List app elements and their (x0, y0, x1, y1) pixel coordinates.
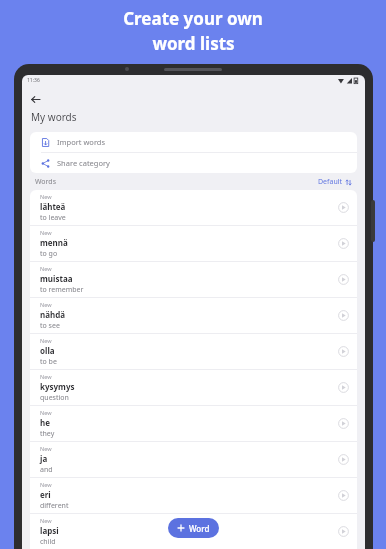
staticText: Import words (57, 137, 106, 147)
button[interactable]: New (30, 442, 357, 477)
staticText: he (40, 417, 50, 428)
button[interactable]: Share category (30, 153, 357, 173)
button[interactable]: Play pronunciation (338, 418, 349, 429)
staticText: they (40, 429, 55, 439)
button[interactable]: New (30, 334, 357, 369)
button[interactable]: New (30, 478, 357, 513)
staticText: Create your own (123, 7, 263, 30)
staticText: to leave (40, 213, 66, 223)
staticText: New (40, 193, 52, 200)
staticText: to be (40, 357, 57, 367)
staticText: New (40, 481, 52, 488)
staticText: lapsi (40, 525, 59, 536)
staticText: lähteä (40, 201, 66, 212)
staticText: different (40, 501, 69, 511)
button[interactable]: New (30, 298, 357, 333)
button[interactable]: Play pronunciation (338, 454, 349, 465)
staticText: New (40, 229, 52, 236)
staticText: to remember (40, 285, 84, 295)
button[interactable]: New (30, 226, 357, 261)
staticText: 11:36 (27, 77, 40, 84)
button[interactable]: Play pronunciation (338, 346, 349, 357)
button[interactable]: Play pronunciation (338, 526, 349, 537)
staticText: New (40, 337, 52, 344)
button[interactable]: Import words (30, 132, 357, 152)
staticText: My words (31, 110, 77, 124)
button[interactable]: New (30, 514, 357, 549)
staticText: kysymys (40, 381, 75, 392)
button[interactable]: Play pronunciation (338, 382, 349, 393)
staticText: New (40, 265, 52, 272)
button[interactable]: New (30, 406, 357, 441)
staticText: Default (318, 177, 343, 187)
staticText: New (40, 445, 52, 452)
button[interactable]: Play pronunciation (338, 274, 349, 285)
staticText: and (40, 465, 53, 475)
button[interactable]: Play pronunciation (338, 238, 349, 249)
staticText: New (40, 409, 52, 416)
button[interactable]: Default (317, 177, 353, 187)
button[interactable]: New (30, 190, 357, 225)
button[interactable]: Back (27, 91, 43, 107)
staticText: to go (40, 249, 58, 259)
button[interactable]: Play pronunciation (338, 310, 349, 321)
staticText: muistaa (40, 273, 73, 284)
button[interactable]: New (30, 370, 357, 405)
staticText: mennä (40, 237, 68, 248)
button[interactable]: New (30, 262, 357, 297)
staticText: word lists (152, 32, 235, 55)
staticText: New (40, 373, 52, 380)
staticText: eri (40, 489, 51, 500)
staticText: child (40, 537, 56, 547)
staticText: to see (40, 321, 60, 331)
button[interactable]: Play pronunciation (338, 202, 349, 213)
staticText: Word (189, 523, 210, 534)
staticText: nähdä (40, 309, 66, 320)
staticText: question (40, 393, 69, 403)
staticText: Words (35, 177, 57, 187)
button[interactable]: Word (168, 518, 219, 538)
staticText: ja (40, 453, 48, 464)
staticText: New (40, 517, 52, 524)
staticText: New (40, 301, 52, 308)
staticText: Share category (57, 158, 110, 168)
staticText: olla (40, 345, 55, 356)
button[interactable]: Play pronunciation (338, 490, 349, 501)
